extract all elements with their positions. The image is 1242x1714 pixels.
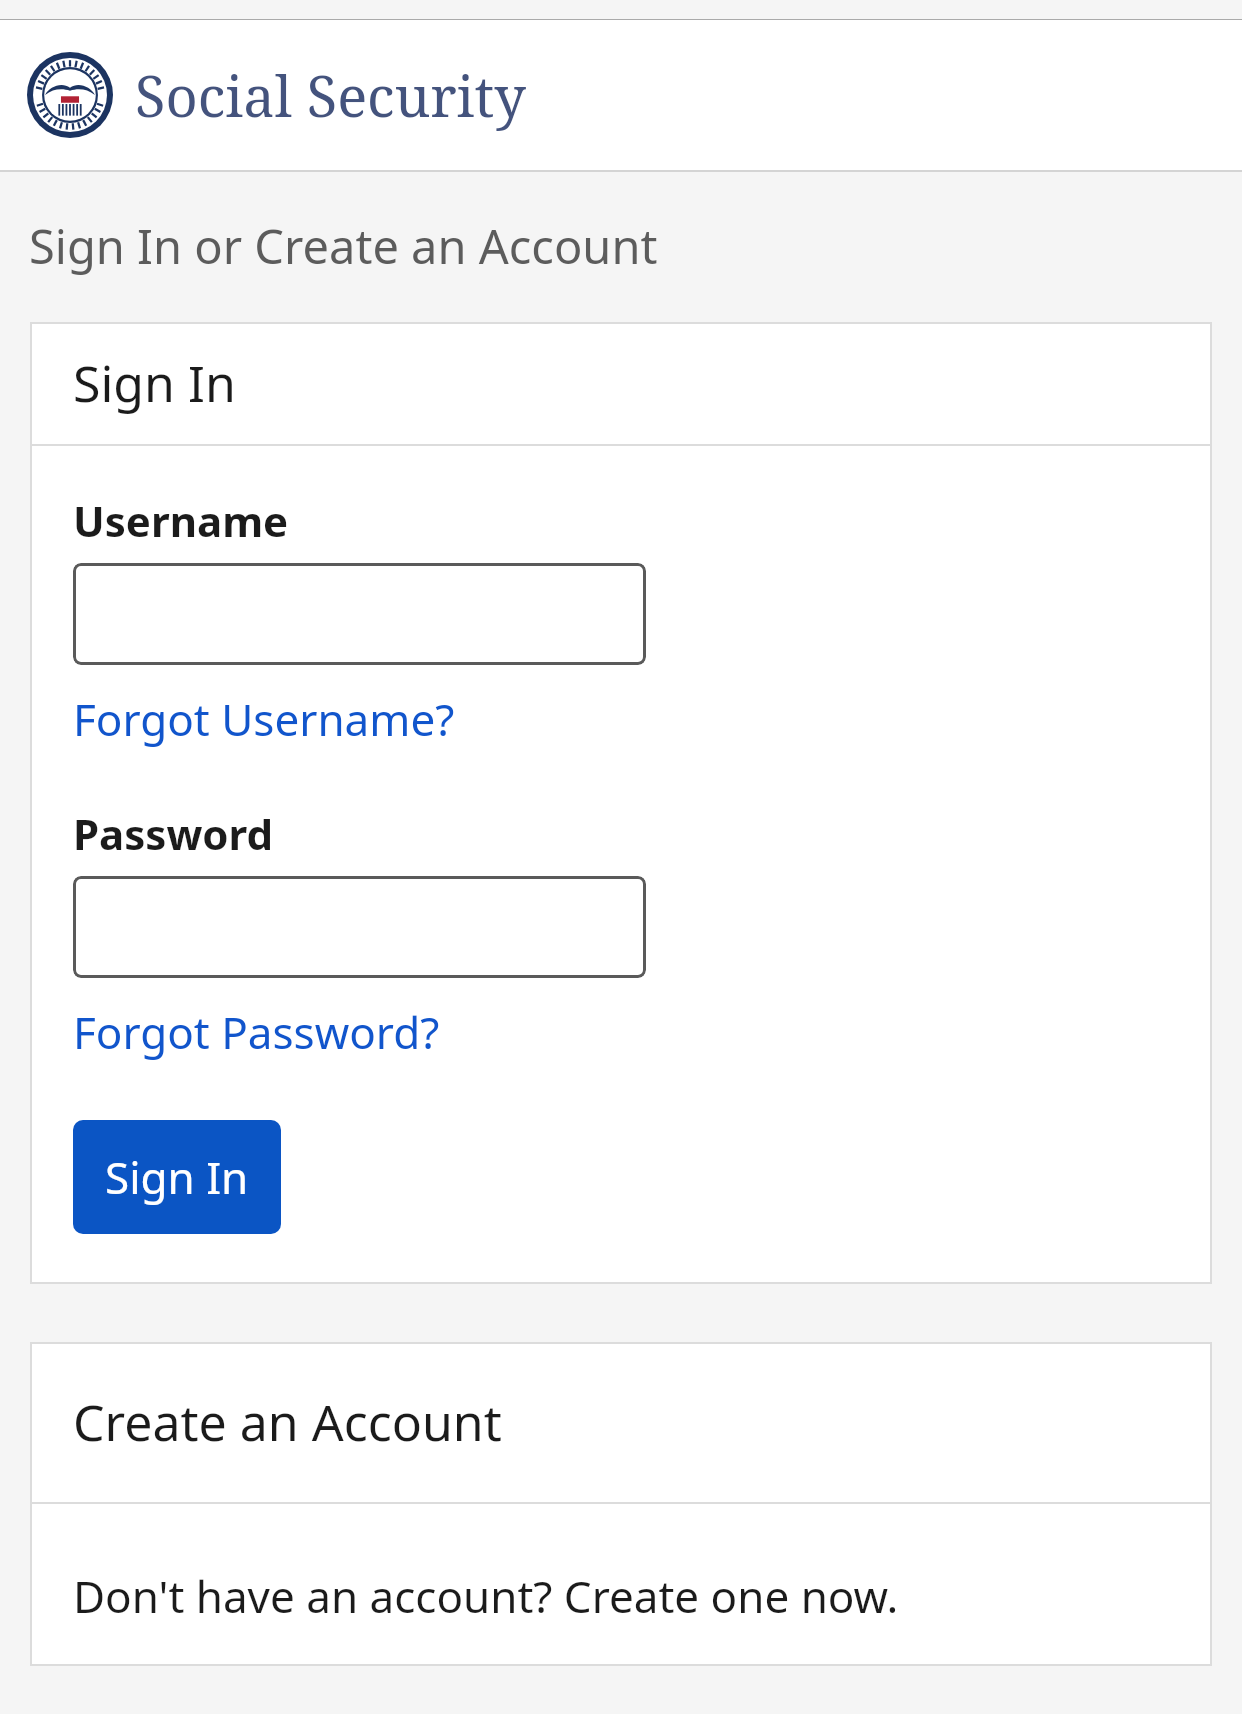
- button[interactable]: text field: [73, 876, 646, 978]
- staticText: Username: [73, 492, 289, 549]
- staticText: Sign In: [105, 1147, 249, 1207]
- staticText: Password: [73, 805, 274, 862]
- button[interactable]: Forgot Username?: [73, 689, 455, 749]
- button[interactable]: Sign In: [73, 1120, 281, 1234]
- staticText: Forgot Username?: [73, 689, 455, 749]
- button[interactable]: Forgot Password?: [73, 1002, 440, 1062]
- staticText: Sign In or Create an Account: [29, 214, 658, 278]
- button[interactable]: text field: [73, 563, 646, 665]
- staticText: Forgot Password?: [73, 1002, 440, 1062]
- staticText: Social Security: [135, 57, 526, 133]
- staticText: Sign In: [73, 349, 236, 417]
- staticText: Create an Account: [73, 1388, 502, 1456]
- button[interactable]: Social Security home: [27, 52, 526, 138]
- staticText: Don't have an account? Create one now.: [73, 1566, 899, 1626]
